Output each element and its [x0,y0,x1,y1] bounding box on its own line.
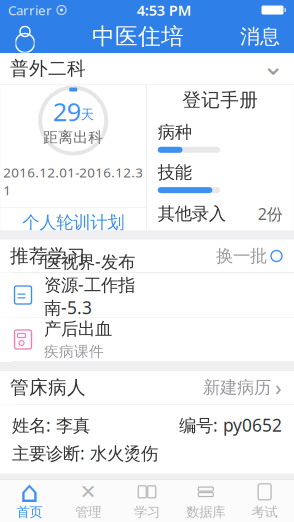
button[interactable]: 姓名: 李真 [0,404,294,473]
staticText: ⌄ [262,50,284,81]
button[interactable]: 考试 [235,480,294,522]
staticText: 姓名: 李真 [12,413,90,436]
button[interactable]: 产后出血 [0,317,294,362]
staticText: 编号: py0652 [179,413,282,436]
staticText: 4:53 PM [137,0,192,20]
staticText: 天 [81,106,94,123]
staticText: 换一批 [216,245,267,267]
button[interactable]: 个人中心 [4,20,46,52]
button[interactable]: ✕ [59,480,118,522]
button[interactable]: 学习 [118,480,176,522]
staticText: 距离出科 [43,128,103,146]
button[interactable]: ⌂ [0,480,59,522]
staticText: ⌂ [20,475,39,508]
staticText: 登记手册 [182,89,258,111]
staticText: 技能 [158,162,192,183]
button[interactable]: 数据库 [176,480,235,522]
staticText: 首页 [16,504,42,520]
button[interactable]: 换一批 [214,241,284,271]
button[interactable]: 新建病历 [201,369,284,406]
staticText: 考试 [252,504,278,520]
staticText: 工作指南 [44,322,104,340]
button[interactable]: 普外二科 [0,53,294,84]
staticText: 2016.12.01-2016.12.31 [3,163,143,199]
staticText: ✕ [80,480,97,503]
button[interactable]: 个人轮训计划 [0,207,146,237]
staticText: 推荐学习 [10,244,86,267]
staticText: 29 [53,95,81,128]
staticText: 2份 [258,203,283,224]
staticText: 学习 [134,504,160,520]
staticText: 病种 [158,121,192,143]
staticText: 新建病历 [203,377,271,398]
staticText: › [275,373,282,402]
staticText: 个人轮训计划 [22,212,124,233]
staticText: 产后出血 [44,318,112,340]
staticText: 医视界-发布资源-工作指南-5.3 [44,250,135,319]
staticText: Carrier [8,1,52,19]
staticText: 疾病课件 [44,343,104,361]
staticText: 中医住培 [92,23,184,50]
button[interactable]: 消息 [230,20,290,53]
staticText: 主要诊断: 水火烫伤 [12,441,158,464]
staticText: 管理 [75,504,101,520]
staticText: 普外二科 [10,57,86,80]
staticText: 消息 [240,24,280,49]
staticText: 数据库 [186,504,225,520]
button[interactable]: 医视界-发布资源-工作指南-5.3 [0,273,294,317]
staticText: 其他录入 [158,203,226,224]
staticText: 管床病人 [10,376,86,399]
